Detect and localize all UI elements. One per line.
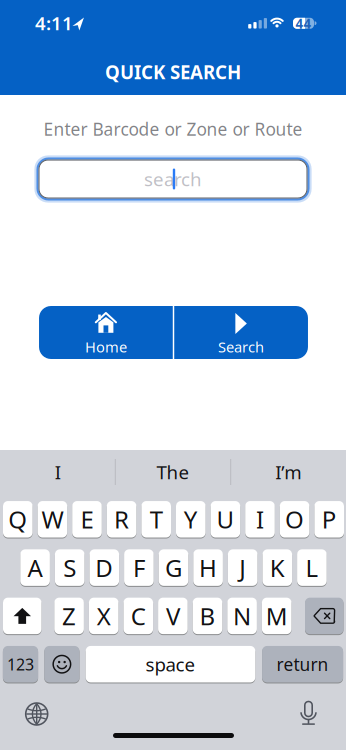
staticText: B (199, 600, 215, 632)
button[interactable]: R (107, 500, 136, 538)
button[interactable]: K (262, 549, 292, 586)
staticText: G (165, 552, 182, 584)
button[interactable]: 123 (3, 645, 38, 683)
staticText: U (216, 503, 234, 535)
staticText: space (145, 652, 195, 677)
button[interactable]: search (35, 156, 310, 201)
staticText: 123 (7, 654, 34, 675)
staticText: H (199, 552, 217, 584)
button[interactable]: W (38, 500, 67, 538)
button[interactable]: A (20, 549, 50, 586)
button[interactable]: D (89, 549, 119, 586)
button[interactable]: space (86, 645, 255, 683)
button[interactable]: Shift (3, 597, 41, 635)
staticText: F (133, 552, 145, 584)
staticText: K (270, 552, 285, 584)
button[interactable]: I’m (232, 452, 345, 492)
staticText: QUICK SEARCH (105, 60, 241, 84)
button[interactable]: B (193, 597, 222, 635)
button[interactable]: N (227, 597, 257, 635)
staticText: search (144, 167, 202, 191)
staticText: P (322, 503, 337, 535)
button[interactable]: L (297, 549, 327, 586)
staticText: M (266, 600, 288, 632)
button[interactable]: S (55, 549, 84, 586)
staticText: C (131, 600, 146, 632)
button[interactable]: return (262, 645, 343, 683)
staticText: Q (8, 503, 27, 535)
staticText: O (285, 503, 304, 535)
button[interactable]: Next keyboard (26, 703, 48, 725)
button[interactable]: V (158, 597, 188, 635)
staticText: X (97, 600, 111, 632)
button[interactable]: Y (176, 500, 206, 538)
button[interactable]: T (141, 500, 171, 538)
button[interactable]: P (314, 500, 344, 538)
button[interactable]: Home (39, 306, 173, 359)
button[interactable]: Emoji (44, 645, 79, 683)
staticText: I (256, 503, 264, 535)
button[interactable]: The (116, 452, 229, 492)
staticText: L (305, 552, 318, 584)
staticText: The (156, 460, 189, 484)
staticText: N (233, 600, 251, 632)
staticText: Z (62, 600, 76, 632)
button[interactable]: Delete (305, 597, 343, 635)
button[interactable]: H (193, 549, 223, 586)
button[interactable]: Search (174, 306, 308, 359)
staticText: T (150, 503, 163, 535)
button[interactable]: M (262, 597, 291, 635)
staticText: I (55, 460, 61, 484)
staticText: J (239, 552, 246, 584)
button[interactable]: Dictation (299, 700, 318, 725)
staticText: I’m (275, 460, 301, 484)
staticText: Search (218, 337, 264, 357)
staticText: 4:11 (35, 11, 73, 35)
staticText: Enter Barcode or Zone or Route (43, 117, 302, 140)
staticText: Y (184, 503, 198, 535)
button[interactable]: F (124, 549, 154, 586)
button[interactable]: I (1, 452, 114, 492)
button[interactable]: O (280, 500, 309, 538)
button[interactable]: I (245, 500, 275, 538)
staticText: R (114, 503, 129, 535)
staticText: W (41, 503, 63, 535)
button[interactable]: C (123, 597, 153, 635)
staticText: E (80, 503, 93, 535)
button[interactable]: U (211, 500, 240, 538)
button[interactable]: G (159, 549, 188, 586)
staticText: Home (85, 337, 127, 357)
button[interactable]: E (72, 500, 102, 538)
staticText: S (63, 552, 76, 584)
button[interactable]: Q (3, 500, 33, 538)
staticText: V (166, 600, 180, 632)
staticText: return (277, 653, 329, 676)
button[interactable]: X (89, 597, 118, 635)
button[interactable]: J (228, 549, 257, 586)
staticText: A (28, 552, 43, 584)
staticText: D (95, 552, 113, 584)
button[interactable]: Z (54, 597, 84, 635)
staticText: 44 (295, 15, 311, 32)
